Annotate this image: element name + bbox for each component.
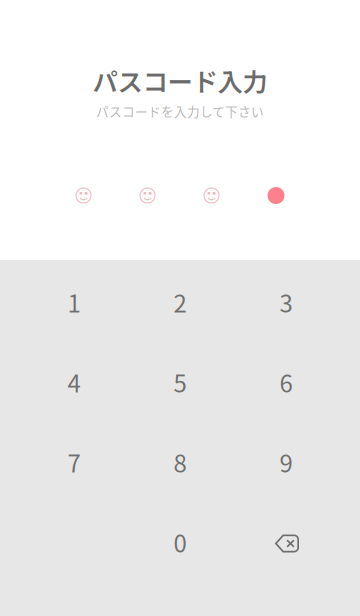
- button[interactable]: 1: [21, 262, 127, 342]
- staticText: パスコードを入力して下さい: [96, 102, 264, 120]
- staticText: 3: [279, 285, 292, 319]
- staticText: 5: [173, 365, 186, 399]
- staticText: 7: [67, 445, 80, 479]
- staticText: パスコード入力: [92, 62, 267, 99]
- staticText: 8: [173, 445, 186, 479]
- button[interactable]: 7: [21, 422, 127, 502]
- button[interactable]: 9: [233, 422, 339, 502]
- button[interactable]: 8: [127, 422, 233, 502]
- button[interactable]: Delete: [233, 502, 339, 582]
- button[interactable]: 6: [233, 342, 339, 422]
- staticText: 1: [67, 285, 80, 319]
- button[interactable]: 2: [127, 262, 233, 342]
- staticText: 9: [279, 445, 292, 479]
- staticText: 6: [279, 365, 292, 399]
- button[interactable]: 3: [233, 262, 339, 342]
- button[interactable]: 0: [127, 502, 233, 582]
- staticText: 4: [67, 365, 80, 399]
- staticText: 2: [173, 285, 186, 319]
- button[interactable]: 4: [21, 342, 127, 422]
- button[interactable]: 5: [127, 342, 233, 422]
- staticText: 0: [173, 525, 186, 559]
